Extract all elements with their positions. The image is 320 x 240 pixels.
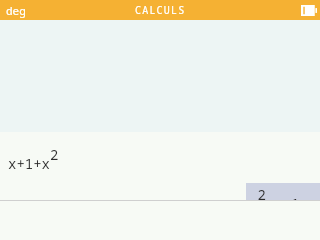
staticText: x+1+x2 [8,145,59,173]
button[interactable]: deg [0,1,32,20]
button[interactable]: x2+x+1 [246,183,320,216]
staticText: CALCULS [135,3,186,17]
button[interactable]: x+1+x2 [7,144,60,174]
staticText: deg [6,3,26,18]
button[interactable]: Battery [300,3,317,17]
staticText: x2+x+1 [249,185,300,213]
